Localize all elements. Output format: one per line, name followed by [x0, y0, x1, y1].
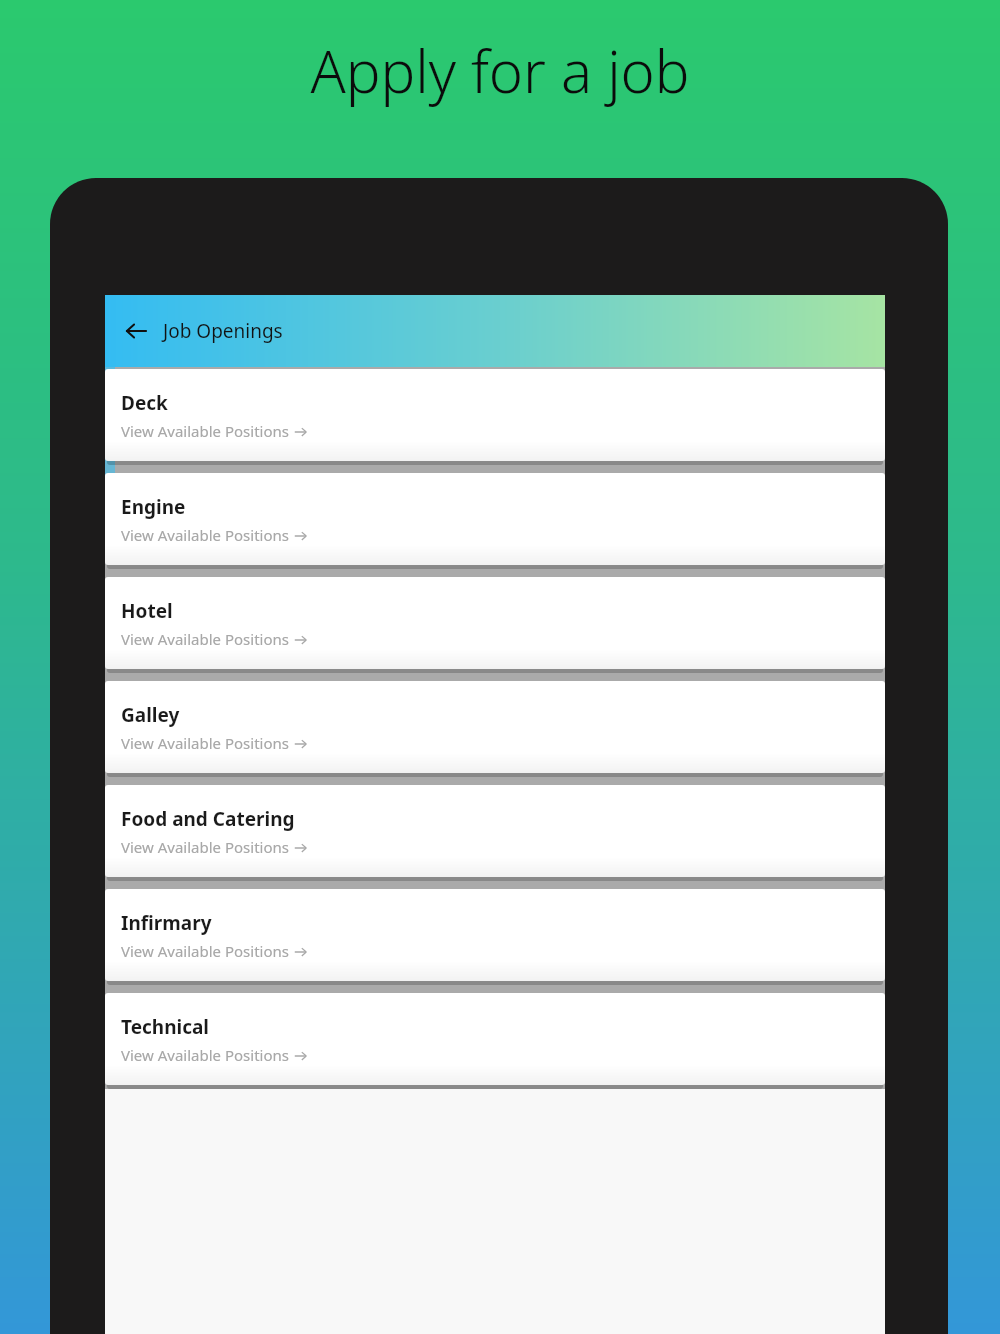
staticText: View Available Positions — [121, 525, 289, 545]
button[interactable]: Galley — [105, 681, 885, 773]
staticText: View Available Positions — [121, 629, 289, 649]
staticText: Hotel — [121, 598, 173, 624]
button[interactable]: Technical — [105, 993, 885, 1085]
staticText: Deck — [121, 390, 168, 416]
staticText: View Available Positions — [121, 941, 289, 961]
staticText: View Available Positions — [121, 837, 289, 857]
button[interactable]: Infirmary — [105, 889, 885, 981]
staticText: Apply for a job — [310, 31, 690, 110]
staticText: View Available Positions — [121, 1045, 289, 1065]
button[interactable]: Hotel — [105, 577, 885, 669]
staticText: Engine — [121, 494, 186, 520]
button[interactable]: Back — [115, 310, 157, 352]
staticText: Technical — [121, 1014, 210, 1040]
staticText: Food and Catering — [121, 806, 295, 832]
staticText: Galley — [121, 702, 180, 728]
staticText: View Available Positions — [121, 421, 289, 441]
button[interactable]: Engine — [105, 473, 885, 565]
staticText: Job Openings — [163, 318, 283, 344]
button[interactable]: Deck — [105, 369, 885, 461]
staticText: Infirmary — [121, 910, 212, 936]
button[interactable]: Food and Catering — [105, 785, 885, 877]
staticText: View Available Positions — [121, 733, 289, 753]
